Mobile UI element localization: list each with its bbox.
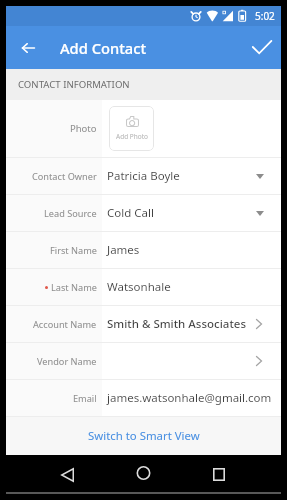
staticText: Photo — [70, 122, 97, 135]
staticText: Vendor Name — [37, 355, 97, 368]
button[interactable]: Account Name — [6, 306, 281, 342]
staticText: Contact Owner — [32, 170, 97, 183]
staticText: Last Name — [51, 281, 97, 294]
staticText: Email — [73, 392, 97, 405]
button[interactable]: Add Photo — [109, 106, 154, 151]
staticText: james.watsonhale@gmail.com — [107, 390, 272, 406]
staticText: Cold Call — [107, 205, 154, 221]
button[interactable]: Switch to Smart View — [6, 417, 281, 455]
button[interactable]: Home — [126, 458, 160, 488]
staticText: First Name — [50, 244, 97, 257]
staticText: Watsonhale — [107, 279, 171, 295]
button[interactable]: Back — [6, 26, 48, 69]
button[interactable]: Last Name — [6, 269, 281, 305]
staticText: James — [107, 242, 140, 258]
staticText: 5:02 — [255, 9, 275, 23]
button[interactable]: Vendor Name — [6, 343, 281, 379]
staticText: Add Contact — [60, 38, 147, 58]
button[interactable]: Recents — [202, 459, 236, 489]
button[interactable]: Email — [6, 380, 281, 416]
button[interactable]: Lead Source — [6, 195, 281, 231]
button[interactable]: Contact Owner — [6, 158, 281, 194]
button[interactable]: Back — [50, 460, 84, 490]
button[interactable]: First Name — [6, 232, 281, 268]
staticText: Smith & Smith Associates — [107, 316, 246, 332]
staticText: Add Photo — [116, 132, 148, 141]
staticText: Patricia Boyle — [107, 168, 180, 184]
button[interactable]: Save — [239, 26, 281, 69]
staticText: Lead Source — [44, 207, 97, 220]
staticText: CONTACT INFORMATION — [18, 78, 130, 91]
staticText: Account Name — [33, 318, 97, 331]
staticText: Switch to Smart View — [88, 428, 200, 444]
